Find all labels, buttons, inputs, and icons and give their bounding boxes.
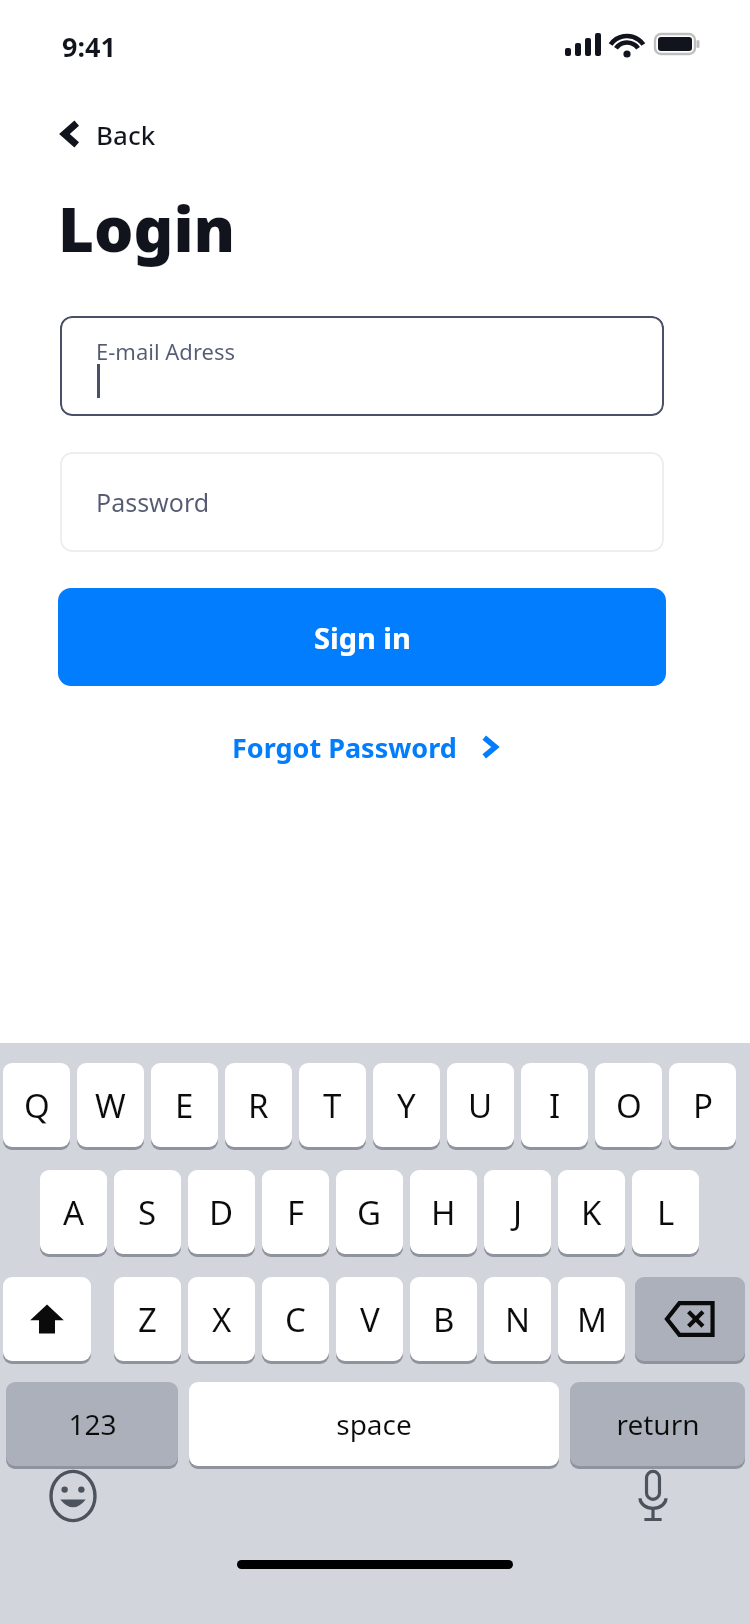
- button[interactable]: T: [299, 1063, 366, 1147]
- staticText: E: [175, 1083, 194, 1128]
- staticText: Z: [138, 1297, 157, 1342]
- staticText: I: [549, 1083, 561, 1128]
- button[interactable]: O: [595, 1063, 662, 1147]
- staticText: Sign in: [314, 618, 411, 657]
- staticText: F: [287, 1190, 305, 1235]
- button[interactable]: Back: [46, 106, 170, 162]
- staticText: B: [433, 1297, 455, 1342]
- button[interactable]: Password: [60, 452, 664, 552]
- button[interactable]: X: [188, 1277, 255, 1361]
- button[interactable]: N: [484, 1277, 551, 1361]
- staticText: Forgot Password: [232, 729, 457, 766]
- button[interactable]: Forgot Password: [228, 716, 503, 778]
- staticText: L: [657, 1190, 675, 1235]
- button[interactable]: V: [336, 1277, 403, 1361]
- staticText: N: [505, 1297, 531, 1342]
- button[interactable]: E: [151, 1063, 218, 1147]
- button[interactable]: Backspace: [635, 1277, 745, 1361]
- button[interactable]: R: [225, 1063, 292, 1147]
- staticText: J: [513, 1190, 523, 1235]
- staticText: X: [212, 1297, 232, 1342]
- button[interactable]: L: [632, 1170, 699, 1254]
- button[interactable]: E-mail Adress: [60, 316, 664, 416]
- button[interactable]: Q: [3, 1063, 70, 1147]
- button[interactable]: K: [558, 1170, 625, 1254]
- staticText: space: [336, 1405, 412, 1443]
- staticText: D: [209, 1190, 234, 1235]
- button[interactable]: B: [410, 1277, 477, 1361]
- staticText: O: [616, 1083, 642, 1128]
- staticText: return: [616, 1405, 700, 1443]
- button[interactable]: Shift: [3, 1277, 91, 1361]
- button[interactable]: C: [262, 1277, 329, 1361]
- staticText: M: [577, 1297, 607, 1342]
- staticText: H: [431, 1190, 456, 1235]
- button[interactable]: U: [447, 1063, 514, 1147]
- staticText: Password: [96, 485, 210, 519]
- staticText: Q: [24, 1083, 50, 1128]
- button[interactable]: return: [570, 1382, 745, 1466]
- button[interactable]: M: [558, 1277, 625, 1361]
- button[interactable]: S: [114, 1170, 181, 1254]
- staticText: Login: [58, 186, 236, 270]
- staticText: S: [138, 1190, 157, 1235]
- staticText: C: [285, 1297, 306, 1342]
- staticText: Back: [96, 117, 156, 152]
- staticText: 9:41: [62, 28, 116, 65]
- button[interactable]: I: [521, 1063, 588, 1147]
- button[interactable]: 123: [6, 1382, 178, 1466]
- button[interactable]: F: [262, 1170, 329, 1254]
- button[interactable]: D: [188, 1170, 255, 1254]
- staticText: R: [248, 1083, 269, 1128]
- button[interactable]: P: [669, 1063, 736, 1147]
- staticText: 123: [68, 1405, 117, 1443]
- button[interactable]: space: [189, 1382, 559, 1466]
- button[interactable]: Z: [114, 1277, 181, 1361]
- staticText: A: [63, 1190, 85, 1235]
- button[interactable]: G: [336, 1170, 403, 1254]
- staticText: K: [581, 1190, 602, 1235]
- button[interactable]: H: [410, 1170, 477, 1254]
- staticText: E-mail Adress: [96, 336, 236, 366]
- staticText: Y: [397, 1083, 416, 1128]
- button[interactable]: J: [484, 1170, 551, 1254]
- staticText: G: [357, 1190, 382, 1235]
- button[interactable]: Y: [373, 1063, 440, 1147]
- button[interactable]: W: [77, 1063, 144, 1147]
- staticText: V: [360, 1297, 380, 1342]
- button[interactable]: Dictation: [616, 1459, 690, 1533]
- staticText: T: [323, 1083, 342, 1128]
- staticText: W: [95, 1083, 126, 1128]
- button[interactable]: Emoji: [36, 1459, 110, 1533]
- staticText: P: [693, 1083, 713, 1128]
- button[interactable]: A: [40, 1170, 107, 1254]
- button[interactable]: Sign in: [58, 588, 666, 686]
- staticText: U: [468, 1083, 493, 1128]
